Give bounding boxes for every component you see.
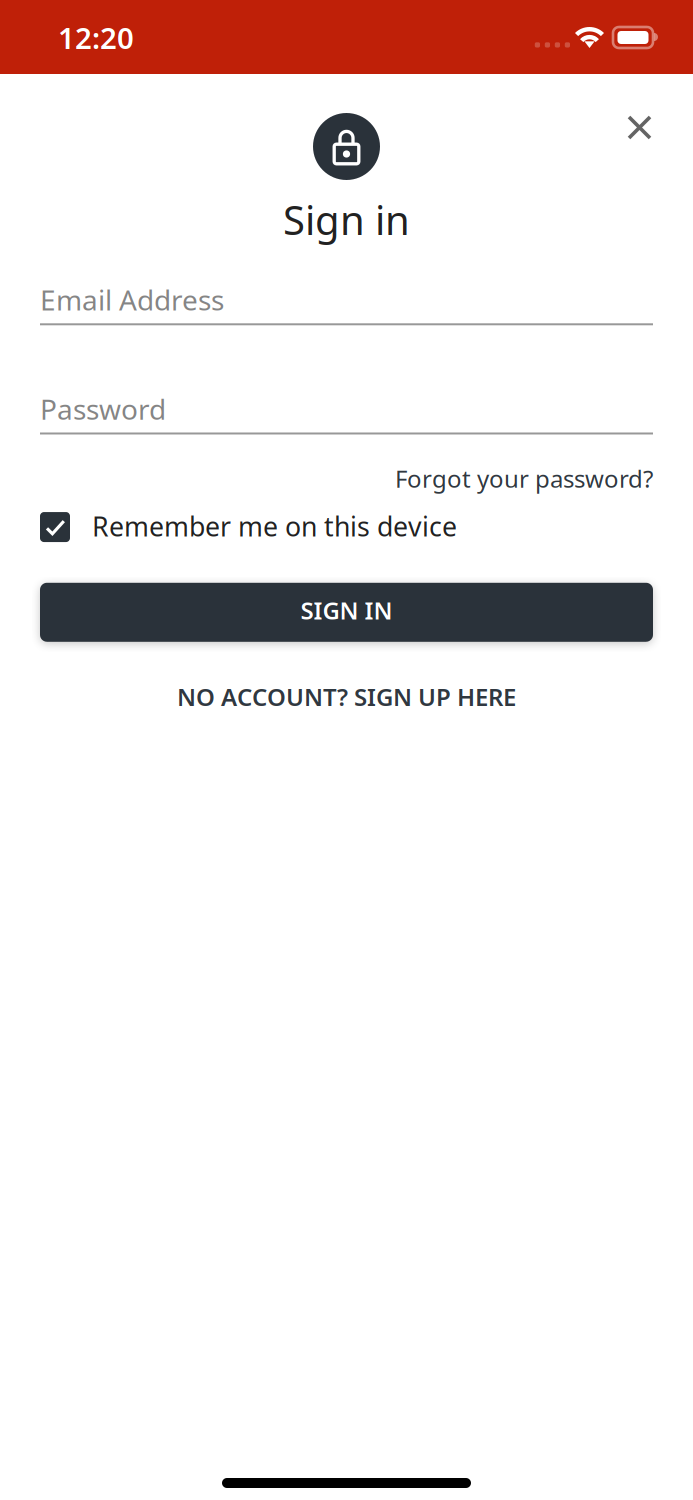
staticText: NO ACCOUNT? SIGN UP HERE (177, 681, 516, 713)
staticText: Forgot your password? (395, 462, 653, 494)
button[interactable]: Close (627, 115, 652, 140)
button[interactable]: Forgot your password? (395, 462, 653, 494)
staticText: SIGN IN (300, 594, 392, 626)
button[interactable]: NO ACCOUNT? SIGN UP HERE (40, 681, 653, 713)
staticText: Remember me on this device (92, 508, 457, 544)
staticText: Sign in (283, 193, 410, 246)
staticText: Email Address (40, 281, 224, 318)
staticText: Password (40, 390, 166, 427)
button[interactable]: SIGN IN (40, 583, 653, 642)
button[interactable]: Remember me on this device (40, 509, 653, 545)
staticText: 12:20 (58, 18, 134, 57)
button[interactable]: Email Address (40, 281, 653, 325)
button[interactable]: Password (40, 390, 653, 434)
